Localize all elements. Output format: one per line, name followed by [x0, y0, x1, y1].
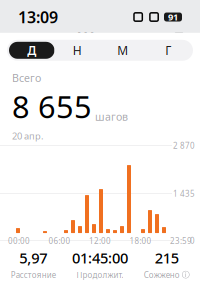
staticText: 23:59	[170, 235, 192, 246]
staticText: 01:45:00	[72, 248, 128, 268]
staticText: 91	[168, 11, 178, 23]
staticText: 5,97	[19, 248, 47, 268]
button[interactable]: Г	[145, 42, 191, 59]
staticText: 0	[190, 235, 195, 246]
staticText: 20 апр.	[12, 130, 44, 142]
staticText: Д	[27, 42, 36, 58]
staticText: Всего	[12, 71, 41, 85]
staticText: 2 870	[173, 140, 195, 151]
staticText: 12:00	[89, 235, 111, 246]
staticText: Н	[73, 42, 82, 58]
staticText: шагов	[95, 109, 128, 124]
button[interactable]: Назад	[6, 27, 36, 51]
staticText: Продолжит.	[76, 270, 123, 280]
staticText: 1 435	[173, 188, 195, 199]
staticText: 215	[155, 248, 179, 268]
staticText: 8 655	[12, 86, 92, 127]
button[interactable]: М	[100, 42, 145, 59]
staticText: Г	[165, 42, 171, 58]
staticText: 06:00	[48, 235, 70, 246]
staticText: Расстояние	[11, 270, 56, 280]
button[interactable]: Поделиться	[164, 27, 194, 51]
staticText: 18:00	[129, 235, 151, 246]
button[interactable]: Д	[9, 42, 54, 59]
staticText: ‹	[16, 19, 25, 58]
staticText: ⓘ	[182, 270, 190, 280]
staticText: Шаги	[76, 27, 123, 50]
staticText: М	[117, 42, 128, 58]
staticText: Сожжено	[144, 270, 180, 280]
staticText: ↗	[175, 29, 186, 44]
staticText: 00:00	[8, 235, 30, 246]
staticText: 13:09	[18, 6, 58, 28]
button[interactable]: Н	[54, 42, 100, 59]
